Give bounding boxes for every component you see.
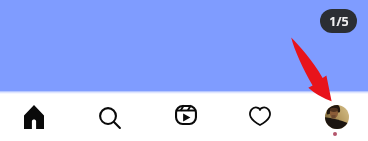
staticText: 1/5 — [329, 13, 349, 30]
button[interactable]: 1/5 — [320, 9, 357, 33]
button[interactable]: Reels — [175, 105, 197, 125]
button[interactable]: Home — [24, 105, 44, 129]
button[interactable]: Search — [99, 107, 121, 129]
button[interactable]: Likes — [248, 106, 272, 126]
button[interactable]: Profile — [325, 105, 349, 129]
